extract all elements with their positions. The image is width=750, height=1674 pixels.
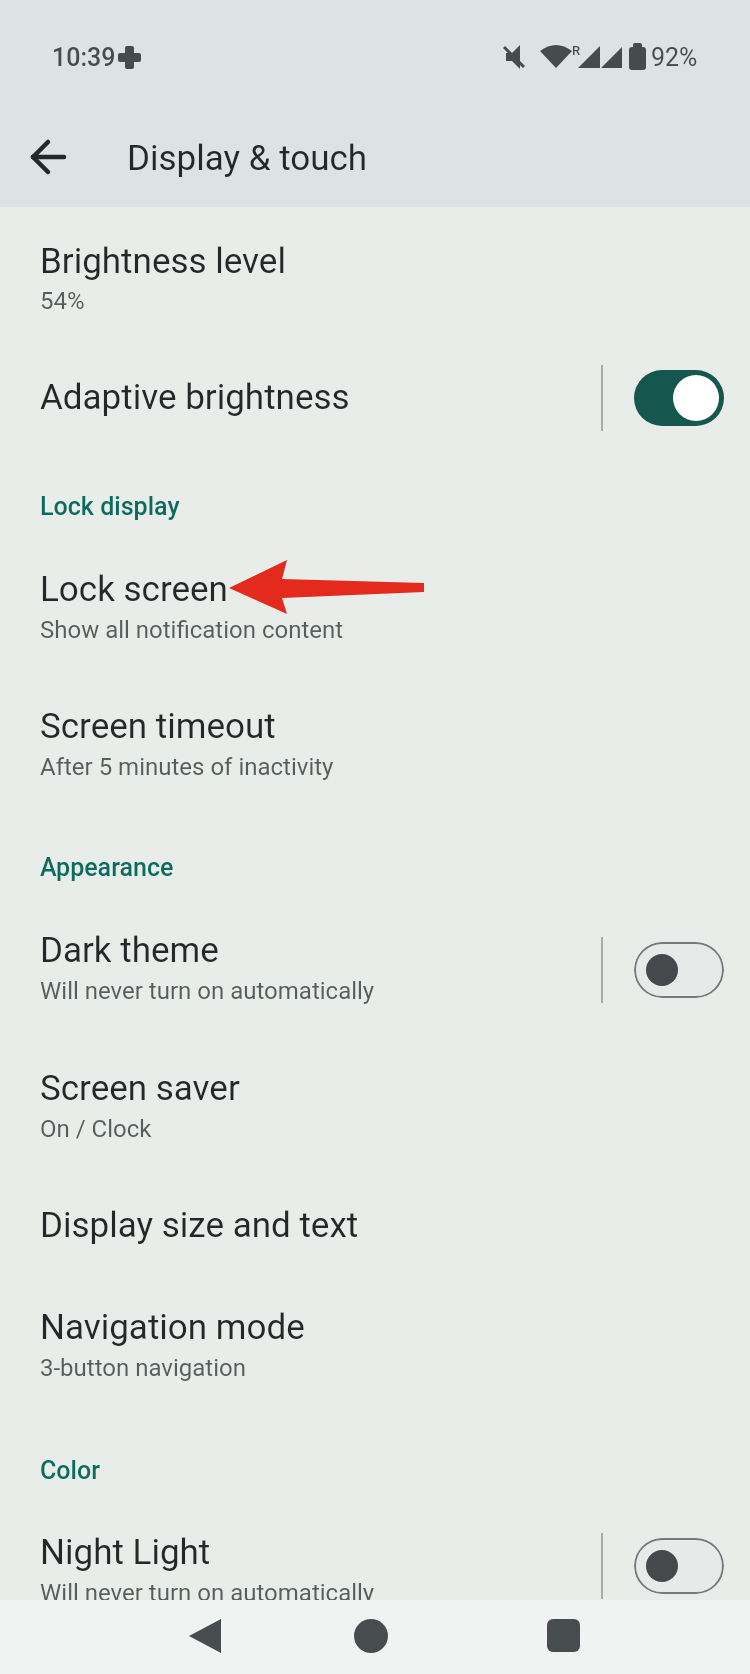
staticText: On / Clock (40, 1115, 152, 1143)
staticText: Appearance (40, 853, 174, 882)
staticText: 10:39 (52, 43, 116, 72)
button[interactable] (321, 1602, 421, 1672)
staticText: 92% (651, 43, 698, 72)
staticText: Brightness level (40, 241, 286, 282)
staticText: Navigation mode (40, 1307, 305, 1348)
staticText: Night Light (40, 1532, 211, 1573)
button[interactable]: Screen timeout (0, 675, 750, 811)
staticText: Screen saver (40, 1068, 240, 1109)
staticText: 3-button navigation (40, 1354, 246, 1382)
staticText: Screen timeout (40, 706, 276, 747)
staticText: Will never turn on automatically (40, 1579, 375, 1607)
button[interactable] (14, 130, 84, 186)
button[interactable] (634, 1538, 724, 1594)
staticText: 54% (40, 287, 85, 315)
staticText: Display size and text (40, 1205, 359, 1246)
button[interactable]: Screen saver (0, 1037, 750, 1173)
button[interactable] (513, 1602, 613, 1672)
staticText: Adaptive brightness (40, 377, 350, 418)
button[interactable] (155, 1602, 255, 1672)
button[interactable]: Adaptive brightness (0, 346, 750, 450)
staticText: Display & touch (127, 138, 368, 179)
staticText: Lock display (40, 492, 180, 521)
button[interactable]: Night Light (0, 1501, 750, 1600)
staticText: Show all notification content (40, 616, 344, 644)
staticText: R (572, 43, 581, 58)
button[interactable]: Dark theme (0, 899, 750, 1039)
button[interactable]: Brightness level (0, 210, 750, 346)
button[interactable]: Display size and text (0, 1174, 750, 1276)
staticText: Will never turn on automatically (40, 977, 375, 1005)
button[interactable]: Navigation mode (0, 1276, 750, 1412)
staticText: After 5 minutes of inactivity (40, 753, 334, 781)
staticText: Color (40, 1456, 100, 1485)
button[interactable] (634, 942, 724, 998)
button[interactable] (634, 370, 724, 426)
button[interactable]: Lock screen (0, 538, 750, 674)
staticText: Lock screen (40, 569, 228, 610)
staticText: Dark theme (40, 930, 219, 971)
